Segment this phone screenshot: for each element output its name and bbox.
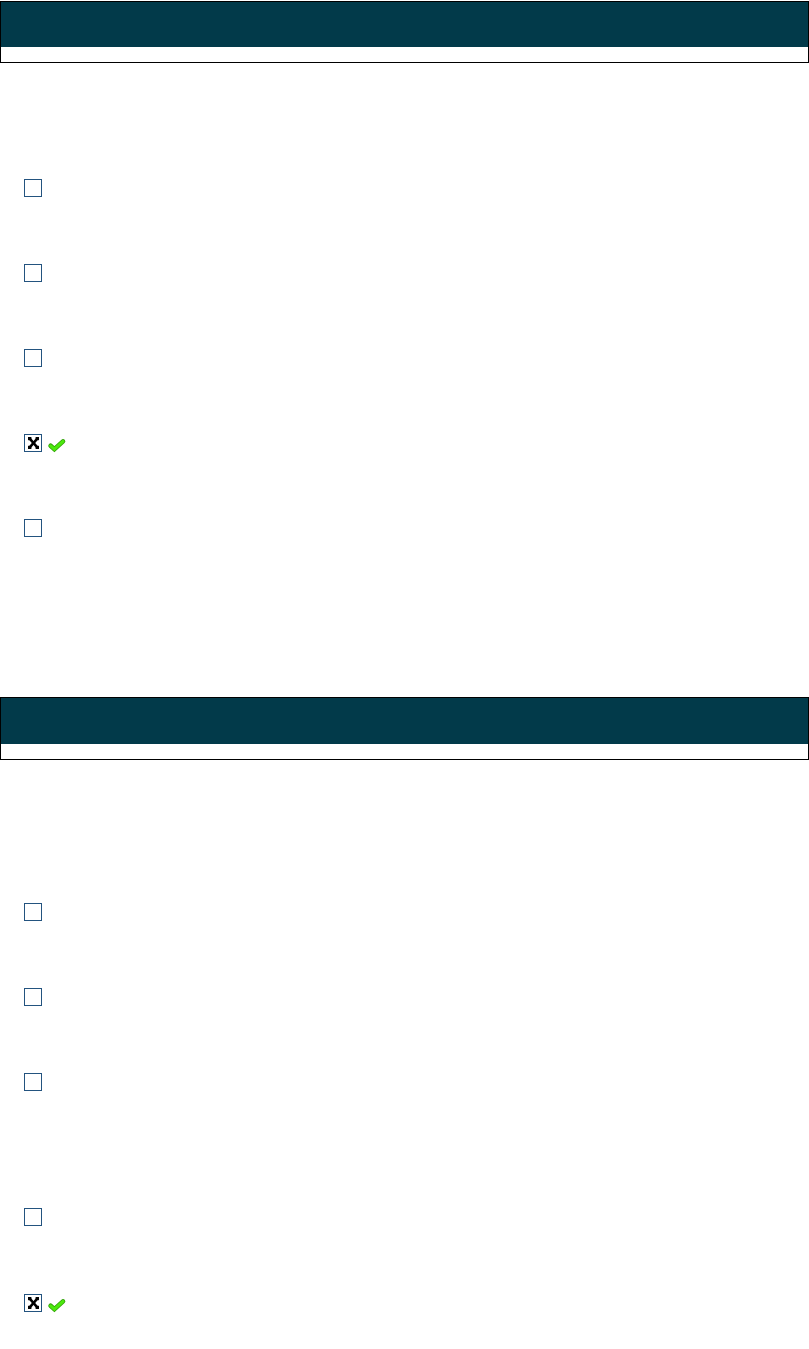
button[interactable]: Checked option, correct [24,434,809,452]
button[interactable]: Unchecked option [24,519,809,537]
button[interactable]: Unchecked option [24,349,809,367]
button[interactable]: Unchecked option [24,1073,809,1091]
button[interactable]: Unchecked option [24,1208,809,1226]
button[interactable]: Unchecked option [24,264,809,282]
button[interactable]: Unchecked option [24,903,809,921]
button[interactable]: Section header [1,2,808,62]
button[interactable]: Section header [1,698,808,759]
button[interactable]: Unchecked option [24,179,809,197]
button[interactable]: Unchecked option [24,988,809,1006]
button[interactable]: Checked option, correct [24,1294,809,1312]
